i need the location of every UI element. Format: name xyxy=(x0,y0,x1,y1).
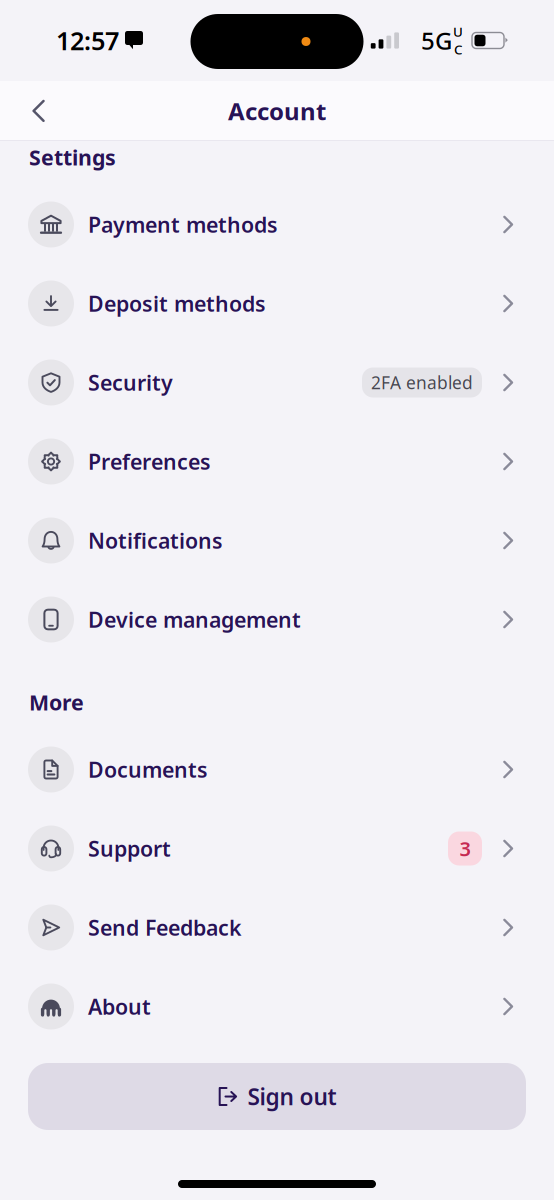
button[interactable]: Documents xyxy=(0,730,554,809)
staticText: Sign out xyxy=(247,1081,336,1111)
staticText: Device management xyxy=(88,605,301,634)
staticText: Deposit methods xyxy=(88,289,266,318)
button[interactable]: Notifications xyxy=(0,501,554,580)
button[interactable]: About xyxy=(0,967,554,1046)
staticText: Support xyxy=(88,834,171,863)
staticText: 5G xyxy=(421,25,452,56)
staticText: Send Feedback xyxy=(88,913,242,942)
staticText: More xyxy=(29,688,84,716)
staticText: 12:57 xyxy=(56,24,119,57)
staticText: Documents xyxy=(88,755,208,784)
staticText: About xyxy=(88,992,151,1021)
button[interactable]: Payment methods xyxy=(0,185,554,264)
button[interactable]: Send Feedback xyxy=(0,888,554,967)
staticText: Account xyxy=(228,95,326,127)
staticText: Security xyxy=(88,368,173,397)
staticText: Payment methods xyxy=(88,210,278,239)
button[interactable]: Preferences xyxy=(0,422,554,501)
button[interactable]: Security xyxy=(0,343,554,422)
button[interactable]: Deposit methods xyxy=(0,264,554,343)
staticText: C xyxy=(454,40,462,58)
staticText: Settings xyxy=(29,143,116,171)
button[interactable]: Back xyxy=(0,86,68,135)
staticText: U xyxy=(453,23,463,40)
button[interactable]: Device management xyxy=(0,580,554,659)
staticText: Preferences xyxy=(88,447,211,476)
staticText: 2FA enabled xyxy=(371,371,473,394)
staticText: 3 xyxy=(459,835,470,862)
button[interactable]: Sign out xyxy=(28,1063,526,1130)
button[interactable]: Support xyxy=(0,809,554,888)
staticText: Notifications xyxy=(88,526,223,555)
